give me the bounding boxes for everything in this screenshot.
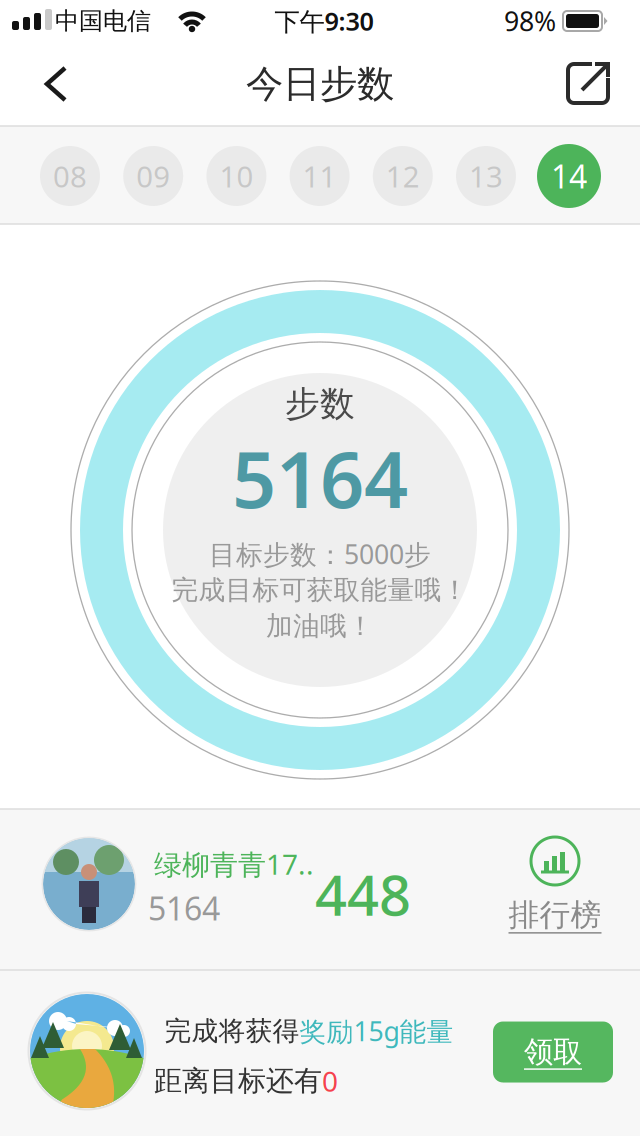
- staticText: 完成目标可获取能量哦！: [171, 574, 468, 606]
- staticText: 13: [469, 156, 503, 195]
- button[interactable]: 排行榜: [495, 831, 615, 943]
- staticText: 加油哦！: [266, 610, 374, 642]
- button[interactable]: 14: [537, 144, 601, 208]
- button[interactable]: 11: [290, 146, 350, 206]
- staticText: 14: [551, 155, 587, 197]
- staticText: 11: [303, 156, 337, 195]
- staticText: 08: [53, 156, 87, 195]
- staticText: 12: [386, 156, 420, 195]
- staticText: 448: [315, 857, 411, 931]
- button[interactable]: 领取: [493, 1021, 613, 1082]
- staticText: 10: [219, 156, 253, 195]
- button[interactable]: 13: [456, 146, 516, 206]
- staticText: 距离目标还有: [154, 1064, 322, 1098]
- staticText: 排行榜: [508, 896, 601, 934]
- staticText: 完成将获得: [164, 1015, 299, 1047]
- button[interactable]: [35, 59, 79, 109]
- button[interactable]: 09: [123, 146, 183, 206]
- button[interactable]: [562, 58, 614, 110]
- staticText: 目标步数：5000步: [209, 536, 431, 572]
- staticText: 今日步数: [246, 61, 394, 107]
- staticText: 步数: [285, 383, 355, 425]
- staticText: 98%: [504, 3, 556, 39]
- staticText: 09: [136, 156, 170, 195]
- button[interactable]: 12: [373, 146, 433, 206]
- staticText: 5164: [232, 427, 408, 529]
- staticText: 奖励15g能量: [299, 1013, 453, 1049]
- staticText: 0: [322, 1062, 338, 1100]
- staticText: 中国电信: [55, 6, 151, 36]
- staticText: 绿柳青青17..: [154, 845, 314, 883]
- button[interactable]: 08: [40, 146, 100, 206]
- button[interactable]: 10: [206, 146, 266, 206]
- staticText: 5164: [148, 887, 220, 929]
- staticText: 领取: [524, 1034, 582, 1070]
- staticText: 下午9:30: [274, 4, 373, 38]
